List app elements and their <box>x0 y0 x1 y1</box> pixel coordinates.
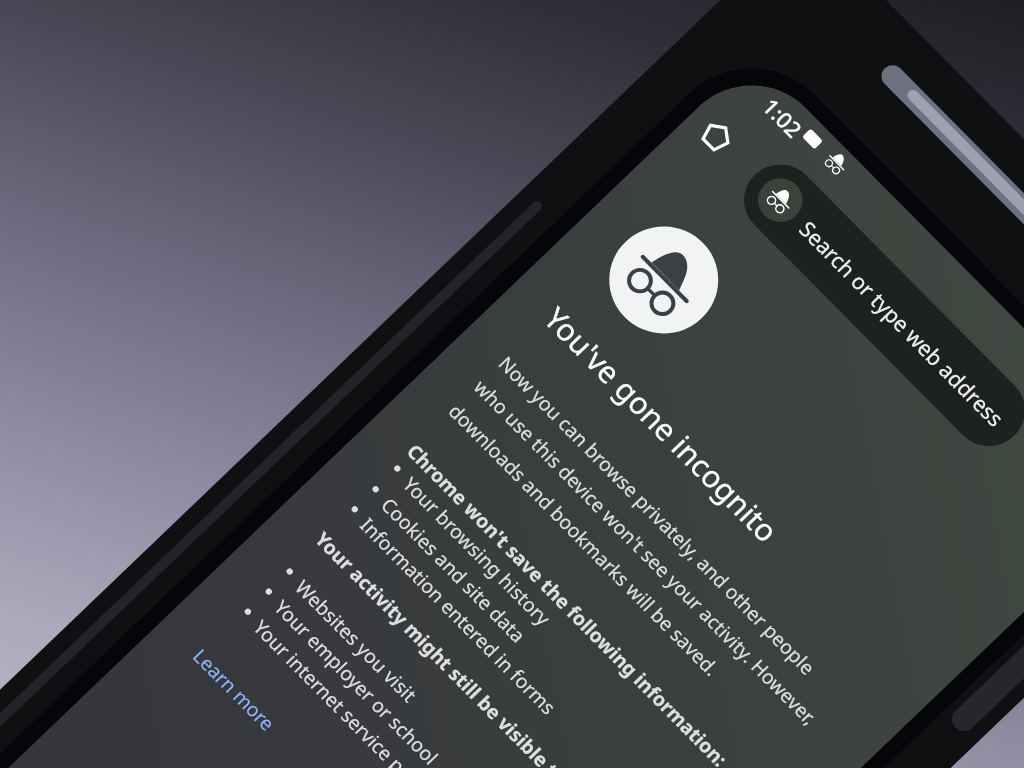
staticText: Learn more <box>187 642 282 736</box>
staticText: Your internet service provider <box>244 614 595 768</box>
button[interactable]: Learn more <box>187 642 282 736</box>
button[interactable]: Home <box>684 104 749 167</box>
staticText: Your employer or school <box>265 594 616 768</box>
staticText: Information entered in forms <box>351 511 702 768</box>
button[interactable]: Search or type web address <box>726 149 1024 461</box>
staticText: Chrome won't save the following informat… <box>397 438 777 768</box>
staticText: Websites you visit <box>286 574 637 768</box>
staticText: Now you can browse privately, and other … <box>439 349 854 758</box>
staticText: Cookies and site data <box>372 491 723 768</box>
staticText: You've gone incognito <box>532 298 865 625</box>
staticText: Your browsing history <box>394 471 745 768</box>
staticText: Search or type web address <box>791 214 1013 433</box>
staticText: 1:02 <box>756 91 810 144</box>
staticText: Your activity might still be visible to: <box>305 526 685 768</box>
